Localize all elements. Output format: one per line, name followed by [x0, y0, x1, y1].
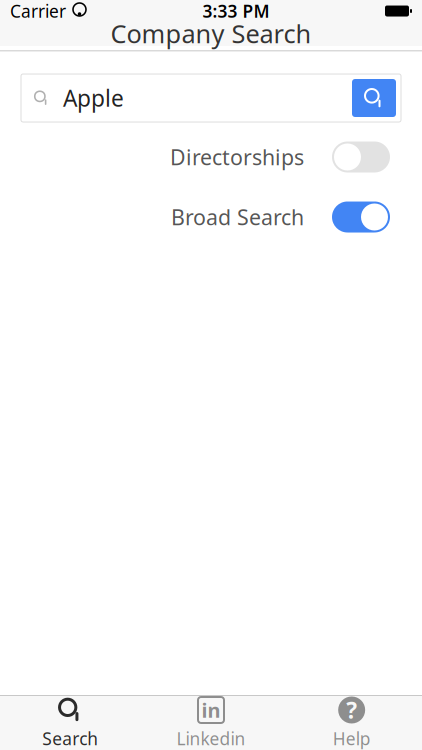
staticText: in: [201, 697, 220, 723]
staticText: Help: [333, 727, 371, 750]
button[interactable]: Directorships: [0, 138, 422, 176]
button[interactable]: Broad Search: [0, 198, 422, 236]
button[interactable]: Search: [0, 696, 141, 750]
button[interactable]: ?: [281, 696, 422, 750]
staticText: Directorships: [170, 143, 304, 171]
staticText: Apple: [63, 83, 124, 113]
staticText: Carrier: [10, 0, 66, 22]
button[interactable]: in: [141, 696, 281, 750]
button[interactable]: Search: [352, 79, 396, 117]
staticText: ?: [346, 695, 357, 725]
staticText: 3:33 PM: [202, 0, 269, 22]
staticText: Company Search: [110, 17, 311, 50]
staticText: Broad Search: [171, 203, 304, 231]
staticText: Search: [42, 727, 98, 750]
staticText: Linkedin: [176, 727, 245, 750]
